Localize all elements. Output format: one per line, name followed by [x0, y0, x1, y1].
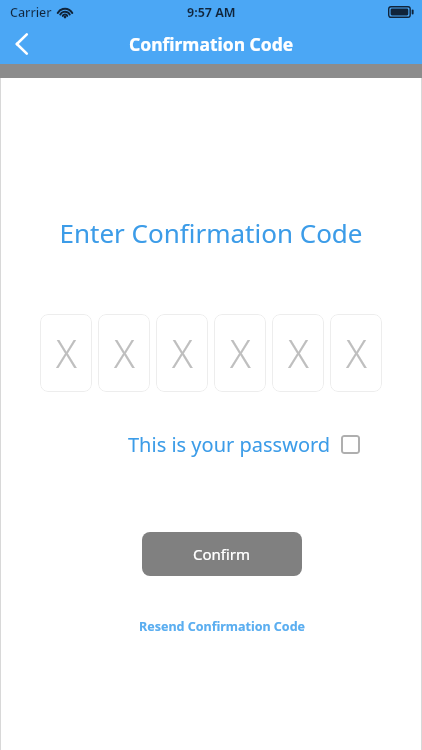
- button[interactable]: X: [272, 314, 324, 392]
- button[interactable]: X: [156, 314, 208, 392]
- staticText: This is your password: [128, 431, 331, 458]
- staticText: X: [230, 327, 251, 379]
- staticText: X: [172, 327, 193, 379]
- staticText: Resend Confirmation Code: [139, 618, 306, 635]
- staticText: X: [56, 327, 77, 379]
- staticText: Carrier: [10, 4, 52, 21]
- staticText: Confirm: [193, 544, 251, 564]
- button[interactable]: Back: [0, 24, 44, 64]
- button[interactable]: X: [214, 314, 266, 392]
- staticText: 9:57 AM: [187, 4, 236, 21]
- button[interactable]: This is your password: [128, 431, 360, 458]
- staticText: Confirmation Code: [129, 32, 294, 56]
- staticText: X: [114, 327, 135, 379]
- staticText: X: [346, 327, 367, 379]
- button[interactable]: Resend Confirmation Code: [133, 614, 312, 639]
- button[interactable]: X: [40, 314, 92, 392]
- button[interactable]: X: [98, 314, 150, 392]
- button[interactable]: Confirm: [142, 532, 302, 576]
- staticText: X: [288, 327, 309, 379]
- button[interactable]: X: [330, 314, 382, 392]
- staticText: Enter Confirmation Code: [0, 215, 422, 250]
